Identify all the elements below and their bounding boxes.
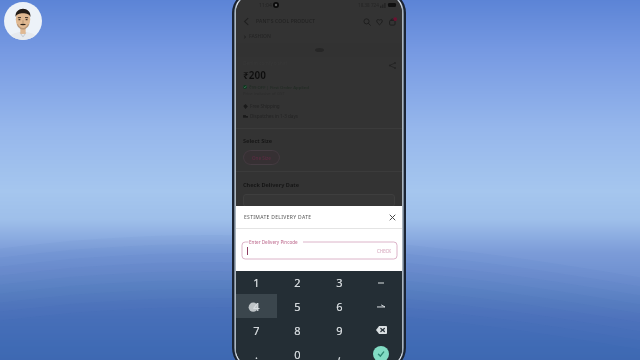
staticText: 2 (294, 275, 301, 290)
button[interactable]: 5 (277, 294, 318, 318)
button[interactable]: 2 (277, 271, 318, 294)
staticText: Free Shipping (250, 103, 280, 109)
staticText: 9 (336, 323, 343, 338)
staticText: 7 (253, 323, 260, 338)
button[interactable]: 1 (236, 271, 277, 294)
staticText: Check Delivery Date (243, 181, 300, 189)
staticText: 0 (294, 347, 301, 360)
button[interactable]: One Size (243, 150, 280, 165)
staticText: FASHION (249, 33, 271, 40)
staticText: 4 (253, 299, 260, 314)
staticText: 1 (253, 275, 260, 290)
button[interactable]: 3 (318, 271, 360, 294)
staticText: Enter Delivery Pincode (249, 239, 298, 245)
staticText: Select Size (243, 137, 273, 145)
button[interactable]: Wishlist (373, 15, 386, 28)
button[interactable]: Share (387, 60, 398, 71)
staticText: 5 (294, 299, 301, 314)
button[interactable]: del (360, 318, 402, 342)
staticText: ₹99 OFF | First Order Applied (249, 84, 309, 90)
button[interactable]: Search (360, 15, 373, 28)
staticText: ESTIMATE DELIVERY DATE (244, 214, 312, 221)
button[interactable]: Shopping bag (386, 15, 399, 28)
staticText: . (255, 347, 258, 360)
staticText: CHECK (377, 248, 392, 254)
button[interactable]: 9 (318, 318, 360, 342)
button[interactable]: Back (240, 15, 253, 28)
staticText: 3 (336, 275, 343, 290)
button[interactable]: Profile (4, 2, 42, 40)
staticText: ₹200 (243, 68, 266, 82)
staticText: 8 (294, 323, 301, 338)
button[interactable]: next (360, 294, 402, 318)
button[interactable]: , (318, 342, 360, 360)
staticText: , (338, 347, 341, 360)
button[interactable]: 8 (277, 318, 318, 342)
staticText: 6 (336, 299, 343, 314)
button[interactable] (360, 271, 402, 294)
staticText: Dispatches in 1-3 days (250, 113, 298, 119)
staticText: 18.38 724 (358, 2, 379, 8)
button[interactable]: 4 (236, 294, 277, 318)
staticText: 11:04 (259, 2, 272, 9)
button[interactable]: . (236, 342, 277, 360)
button[interactable]: 6 (318, 294, 360, 318)
button[interactable]: 7 (236, 318, 277, 342)
button[interactable]: Close (386, 211, 398, 223)
staticText: One Size (252, 155, 271, 161)
button[interactable]: 0 (277, 342, 318, 360)
staticText: PANT'S COOL PRODUCT (256, 18, 316, 25)
button[interactable]: ok (360, 342, 402, 360)
